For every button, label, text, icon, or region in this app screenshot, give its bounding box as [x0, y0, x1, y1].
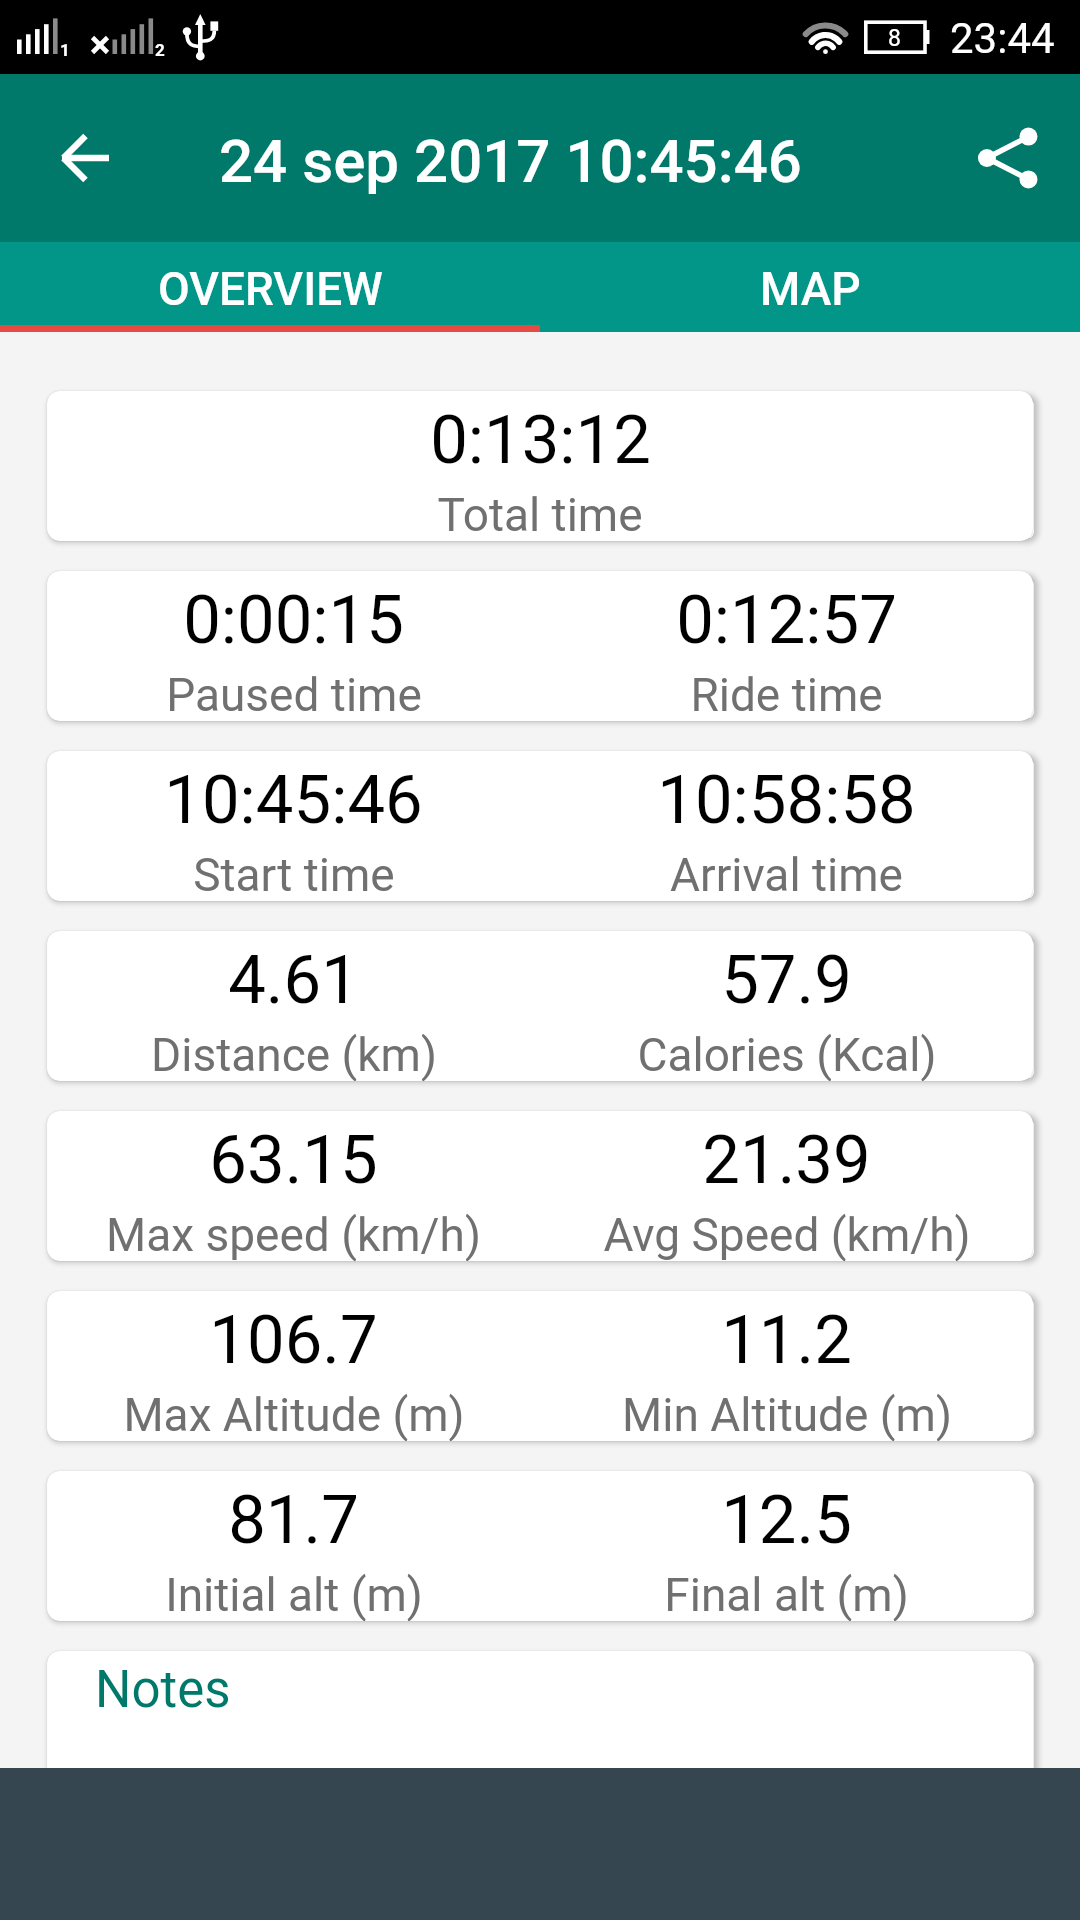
staticText: Final alt (m) [664, 1568, 909, 1621]
staticText: 0:00:15 [183, 581, 404, 660]
button[interactable]: Back [37, 110, 133, 206]
staticText: 57.9 [721, 941, 852, 1020]
staticText: Initial alt (m) [165, 1568, 423, 1621]
staticText: Total time [437, 488, 643, 541]
staticText: 81.7 [228, 1481, 359, 1560]
staticText: 10:45:46 [164, 761, 423, 840]
button[interactable]: 10:45:46 [47, 751, 1033, 901]
staticText: 63.15 [209, 1121, 378, 1200]
staticText: 8 [888, 25, 901, 52]
staticText: Min Altitude (m) [622, 1388, 952, 1441]
staticText: 23:44 [950, 14, 1055, 63]
button[interactable]: 106.7 [47, 1291, 1033, 1441]
staticText: Distance (km) [151, 1028, 437, 1081]
staticText: Arrival time [670, 848, 903, 901]
staticText: 4.61 [228, 941, 359, 1020]
staticText: Notes [95, 1660, 231, 1720]
staticText: 24 sep 2017 10:45:46 [219, 126, 802, 196]
staticText: Paused time [166, 668, 422, 721]
staticText: Start time [193, 848, 395, 901]
staticText: 0:12:57 [676, 581, 897, 660]
button[interactable]: Notes [47, 1651, 1033, 1881]
staticText: Max Altitude (m) [123, 1388, 465, 1441]
staticText: 0:13:12 [430, 401, 651, 480]
staticText: 1 [60, 40, 70, 60]
button[interactable]: 63.15 [47, 1111, 1033, 1261]
staticText: 2 [155, 40, 165, 60]
staticText: MAP [760, 262, 861, 316]
staticText: 106.7 [209, 1301, 378, 1380]
staticText: Calories (Kcal) [637, 1028, 937, 1081]
staticText: 11.2 [721, 1301, 852, 1380]
staticText: Avg Speed (km/h) [603, 1208, 971, 1261]
staticText: 10:58:58 [657, 761, 916, 840]
button[interactable]: 4.61 [47, 931, 1033, 1081]
staticText: OVERVIEW [158, 262, 383, 316]
button[interactable]: OVERVIEW [0, 242, 540, 332]
button[interactable]: 0:00:15 [47, 571, 1033, 721]
button[interactable]: 0:13:12 [47, 391, 1033, 541]
staticText: Ride time [690, 668, 883, 721]
staticText: Max speed (km/h) [106, 1208, 481, 1261]
staticText: 21.39 [702, 1121, 871, 1200]
button[interactable]: MAP [540, 242, 1080, 332]
button[interactable]: Share [960, 110, 1056, 206]
button[interactable]: 81.7 [47, 1471, 1033, 1621]
staticText: 12.5 [721, 1481, 852, 1560]
